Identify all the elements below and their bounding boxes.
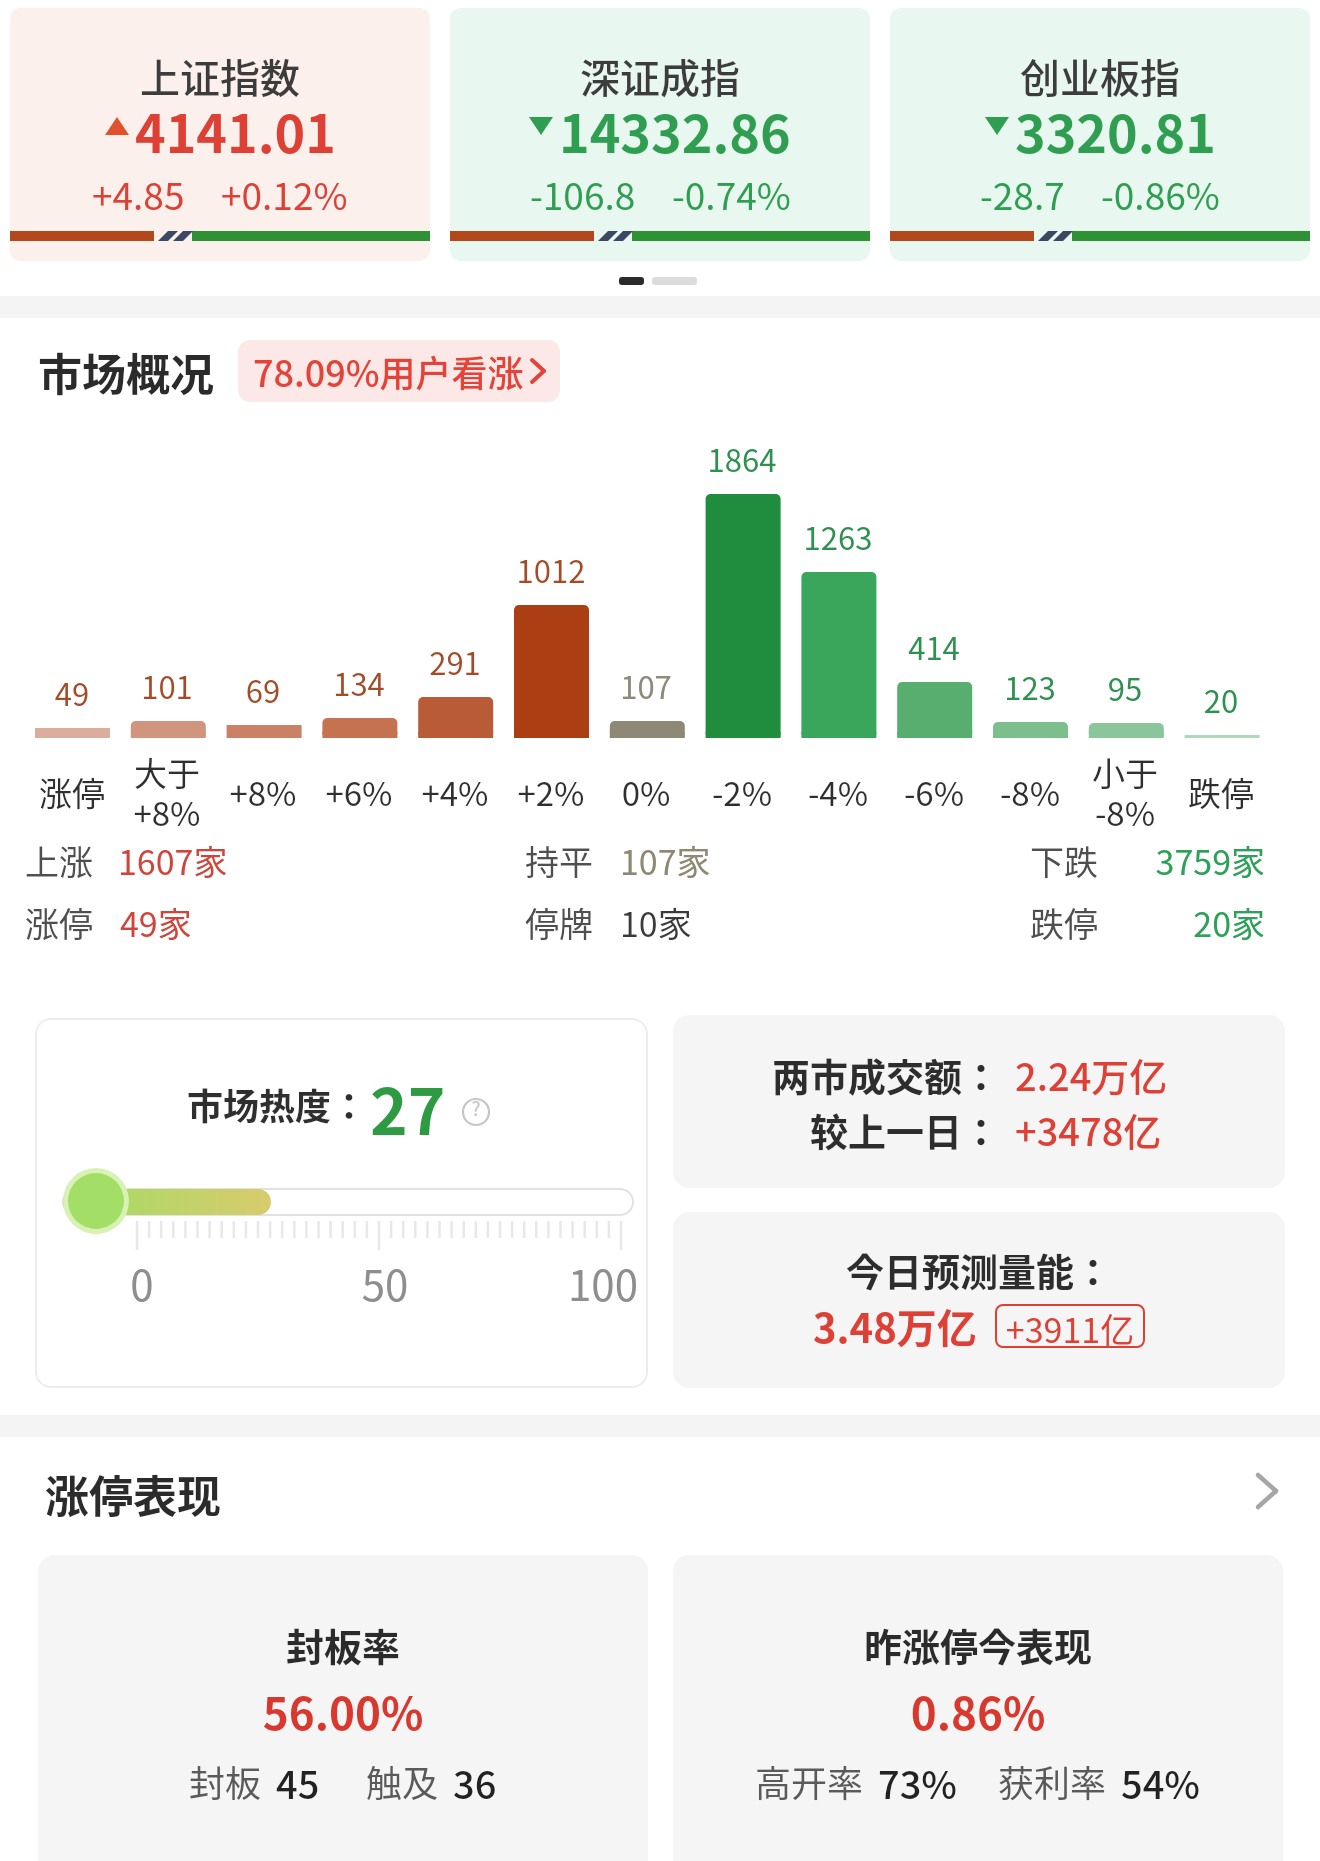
staticText: +4% (395, 768, 515, 816)
staticText: 107 (586, 663, 706, 708)
staticText: 4141.01 (135, 93, 336, 159)
staticText: 123 (970, 664, 1090, 709)
staticText: 49家 (120, 898, 192, 947)
staticText: 78.09%用户看涨 (253, 345, 524, 397)
staticText: 深证成指 (450, 47, 870, 105)
staticText: 跌停 (1030, 898, 1098, 947)
staticText: 45 (276, 1755, 320, 1803)
staticText: 涨停 (12, 768, 132, 816)
staticText: +2% (491, 768, 611, 816)
staticText: 0 (112, 1252, 172, 1313)
staticText: 20家 (1000, 898, 1265, 947)
staticText: 1263 (778, 514, 898, 559)
button[interactable]: 上证指数 (10, 8, 430, 261)
staticText: 0% (586, 768, 706, 816)
staticText: 高开率 (755, 1755, 864, 1803)
staticText: -2% (682, 768, 802, 816)
staticText: -4% (778, 768, 898, 816)
staticText: 2.24万亿 (1015, 1047, 1168, 1102)
staticText: -8% (970, 768, 1090, 816)
staticText: 10家 (620, 898, 692, 947)
staticText: 54% (1121, 1755, 1201, 1803)
staticText: 3320.81 (1015, 93, 1216, 159)
staticText: 市场热度： (187, 1078, 368, 1130)
staticText: -6% (874, 768, 994, 816)
button[interactable]: 昨涨停今表现 (673, 1555, 1283, 1861)
staticText: 小于 -8% (1065, 748, 1185, 836)
staticText: 95 (1065, 665, 1185, 710)
staticText: 大于 +8% (107, 748, 227, 836)
staticText: 20 (1161, 677, 1281, 722)
button[interactable]: 今日预测量能： (673, 1212, 1285, 1388)
staticText: 73% (878, 1755, 958, 1803)
staticText: +6% (299, 768, 419, 816)
staticText: 414 (874, 624, 994, 669)
staticText: 1012 (491, 547, 611, 592)
staticText: 获利率 (998, 1755, 1107, 1803)
staticText: -0.86% (1101, 167, 1220, 219)
staticText: +0.12% (221, 167, 348, 219)
staticText: 两市成交额： (673, 1047, 1000, 1102)
staticText: 0.86% (673, 1679, 1283, 1743)
staticText: 27 (370, 1061, 446, 1154)
button[interactable]: 深证成指 (450, 8, 870, 261)
button[interactable]: 两市成交额： (673, 1015, 1285, 1188)
staticText: +4.85 (92, 167, 185, 219)
staticText: 14332.86 (559, 93, 791, 159)
staticText: 上涨 (25, 836, 93, 885)
staticText: -0.74% (672, 167, 791, 219)
staticText: 触及 (366, 1755, 439, 1803)
staticText: 3.48万亿 (813, 1297, 977, 1355)
staticText: +8% (203, 768, 323, 816)
staticText: 134 (299, 660, 419, 705)
staticText: 上证指数 (10, 47, 430, 105)
staticText: -106.8 (530, 167, 636, 219)
staticText: 涨停 (25, 898, 93, 947)
button[interactable]: 78.09%用户看涨 (238, 340, 560, 402)
staticText: 100 (563, 1252, 643, 1313)
staticText: 封板率 (38, 1617, 648, 1672)
staticText: 涨停表现 (45, 1462, 221, 1520)
staticText: 昨涨停今表现 (673, 1617, 1283, 1672)
staticText: 市场概况 (38, 340, 214, 404)
staticText: 291 (395, 639, 515, 684)
staticText: 今日预测量能： (673, 1242, 1285, 1297)
staticText: 较上一日： (673, 1102, 1000, 1157)
button[interactable]: 市场热度： (35, 1018, 648, 1388)
staticText: 1607家 (118, 836, 228, 885)
button[interactable]: 涨停表现 (0, 1462, 1320, 1520)
staticText: 跌停 (1161, 768, 1281, 816)
staticText: 107家 (620, 836, 711, 885)
staticText: +3911亿 (995, 1304, 1145, 1348)
staticText: 封板 (189, 1755, 262, 1803)
staticText: 101 (107, 663, 227, 708)
staticText: 56.00% (38, 1679, 648, 1743)
staticText: -28.7 (980, 167, 1065, 219)
button[interactable]: 创业板指 (890, 8, 1310, 261)
staticText: 下跌 (1030, 836, 1098, 885)
staticText: 36 (453, 1755, 497, 1803)
staticText: +3478亿 (1015, 1102, 1162, 1157)
button[interactable]: 封板率 (38, 1555, 648, 1861)
staticText: 停牌 (525, 898, 593, 947)
staticText: 持平 (525, 836, 593, 885)
staticText: ? (462, 1094, 490, 1122)
staticText: 3759家 (1000, 836, 1265, 885)
staticText: 49 (12, 670, 132, 715)
staticText: 69 (203, 667, 323, 712)
staticText: 50 (350, 1252, 420, 1313)
staticText: 创业板指 (890, 47, 1310, 105)
staticText: 1864 (682, 436, 802, 481)
